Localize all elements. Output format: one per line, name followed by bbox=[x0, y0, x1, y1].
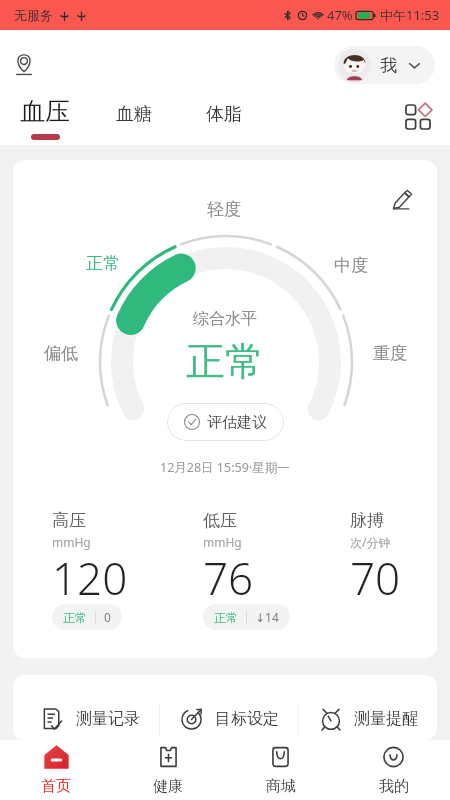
staticText: 中午11:53 bbox=[380, 6, 440, 24]
staticText: 0 bbox=[104, 609, 111, 625]
staticText: 76 bbox=[203, 548, 254, 608]
staticText: 120 bbox=[52, 548, 128, 608]
button[interactable]: 我 bbox=[334, 46, 435, 84]
staticText: 测量提醒 bbox=[354, 709, 418, 729]
staticText: 无服务 bbox=[14, 7, 53, 23]
staticText: 轻度 bbox=[207, 199, 241, 220]
button[interactable]: 评估建议 bbox=[167, 403, 284, 441]
staticText: ↓14 bbox=[255, 609, 279, 625]
staticText: 正常 bbox=[63, 610, 87, 625]
button[interactable]: Edit bbox=[385, 184, 417, 216]
staticText: mmHg bbox=[203, 534, 242, 550]
staticText: 血糖 bbox=[116, 103, 152, 126]
staticText: 低压 bbox=[203, 510, 237, 531]
button[interactable]: 商城 bbox=[224, 740, 337, 800]
staticText: 综合水平 bbox=[193, 309, 257, 329]
staticText: 正常 bbox=[186, 337, 264, 386]
staticText: 正常 bbox=[214, 610, 238, 625]
staticText: 正常 bbox=[86, 253, 120, 274]
staticText: 高压 bbox=[52, 510, 86, 531]
staticText: 我的 bbox=[379, 777, 409, 796]
button[interactable]: 我的 bbox=[337, 740, 450, 800]
button[interactable]: 目标设定 bbox=[160, 697, 298, 740]
staticText: 70 bbox=[350, 548, 401, 608]
staticText: 首页 bbox=[41, 777, 71, 796]
staticText: 12月28日 15:59·星期一 bbox=[160, 459, 290, 476]
button[interactable]: 测量记录 bbox=[21, 697, 159, 740]
button[interactable]: 测量提醒 bbox=[299, 697, 437, 740]
button[interactable]: 体脂 bbox=[206, 94, 242, 140]
staticText: 健康 bbox=[153, 777, 183, 796]
button[interactable]: 首页 bbox=[0, 740, 112, 800]
button[interactable]: Apps bbox=[398, 97, 438, 137]
staticText: 偏低 bbox=[44, 343, 78, 364]
staticText: 脉搏 bbox=[350, 510, 384, 531]
staticText: 血压 bbox=[20, 96, 70, 127]
button[interactable]: 血压 bbox=[20, 93, 70, 140]
staticText: mmHg bbox=[52, 534, 91, 550]
button[interactable]: Location bbox=[4, 45, 44, 85]
staticText: 47% bbox=[327, 6, 353, 24]
staticText: 体脂 bbox=[206, 103, 242, 126]
staticText: 商城 bbox=[266, 777, 296, 796]
staticText: 次/分钟 bbox=[350, 534, 391, 550]
staticText: 评估建议 bbox=[207, 413, 267, 432]
staticText: 测量记录 bbox=[76, 709, 140, 729]
button[interactable]: 健康 bbox=[112, 740, 224, 800]
staticText: 中度 bbox=[334, 255, 368, 276]
button[interactable]: 血糖 bbox=[116, 94, 152, 140]
staticText: 目标设定 bbox=[215, 709, 279, 729]
staticText: 我 bbox=[380, 55, 397, 76]
staticText: 重度 bbox=[373, 343, 407, 364]
